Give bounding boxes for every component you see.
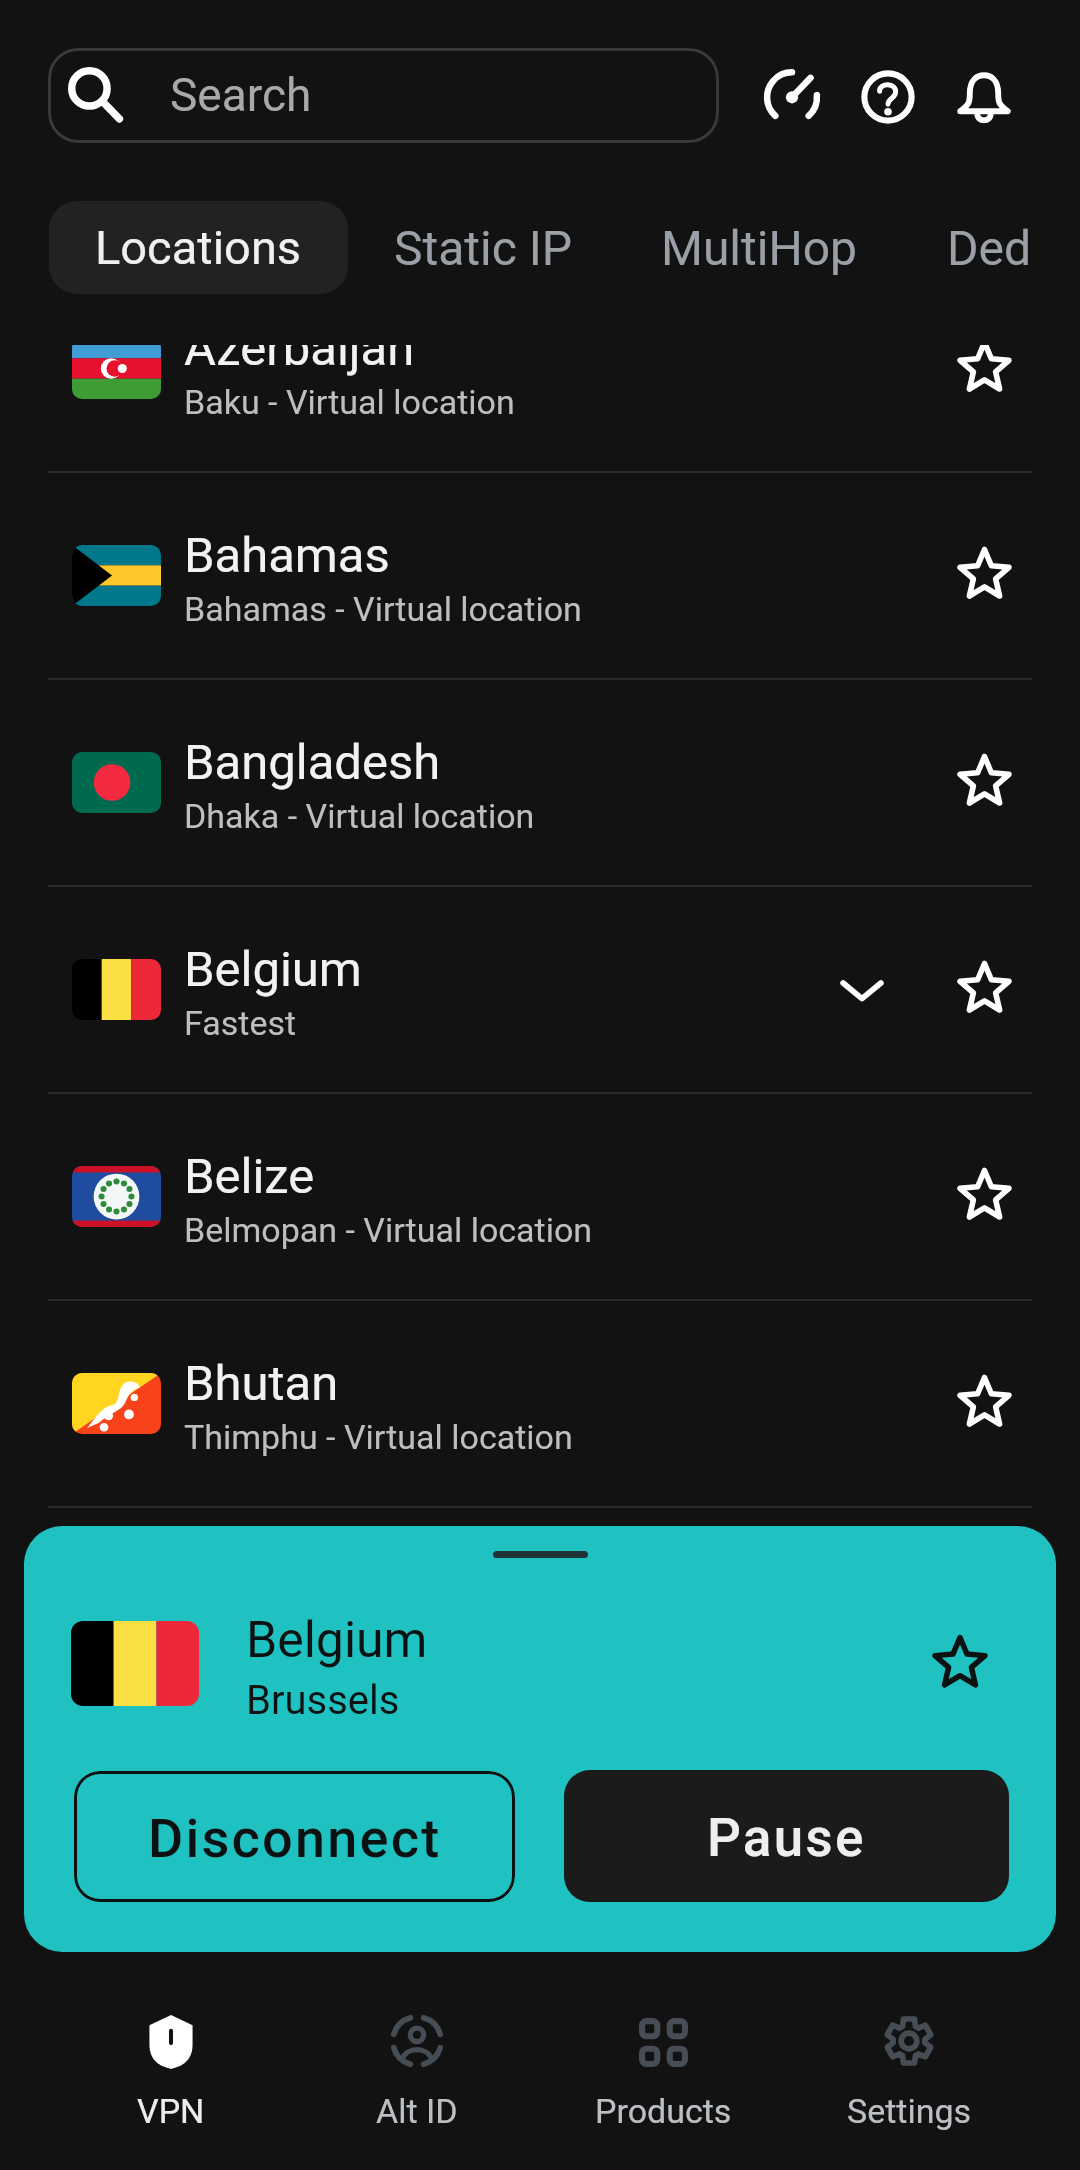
button[interactable]: Alt ID [294, 1952, 540, 2170]
staticText: Static IP [394, 220, 573, 276]
button[interactable]: Favorite [941, 1358, 1027, 1444]
button[interactable]: Belgium [0, 887, 1080, 1092]
staticText: Belgium [246, 1611, 428, 1670]
button[interactable]: Help [840, 49, 936, 145]
button[interactable]: Favorite [941, 345, 1027, 409]
staticText: Settings [847, 2091, 972, 2131]
staticText: Belgium [184, 941, 362, 998]
button[interactable]: Pause [564, 1770, 1009, 1902]
button[interactable]: Favorite [941, 1151, 1027, 1237]
button[interactable]: Favorite [941, 737, 1027, 823]
button[interactable]: Locations [49, 201, 348, 294]
button[interactable]: Azerbaijan [0, 345, 1080, 471]
button[interactable]: Favorite [941, 944, 1027, 1030]
staticText: Brussels [246, 1677, 400, 1724]
button[interactable]: Ded [921, 201, 1076, 294]
staticText: Belize [184, 1148, 315, 1205]
button[interactable]: Static IP [372, 201, 594, 294]
button[interactable]: Bangladesh [0, 680, 1080, 885]
staticText: MultiHop [661, 220, 857, 276]
button[interactable]: Products [540, 1952, 786, 2170]
button[interactable]: VPN [48, 1952, 294, 2170]
staticText: Alt ID [376, 2091, 458, 2131]
staticText: VPN [137, 2091, 205, 2131]
staticText: Bangladesh [184, 734, 441, 791]
staticText: Search [170, 68, 312, 122]
button[interactable]: Expand [819, 947, 905, 1033]
staticText: Fastest [184, 1003, 297, 1043]
staticText: Disconnect [148, 1807, 442, 1870]
staticText: Bhutan [184, 1355, 339, 1412]
staticText: Bahamas - Virtual location [184, 589, 582, 629]
button[interactable]: Notifications [936, 49, 1032, 145]
staticText: Baku - Virtual location [184, 382, 515, 422]
staticText: Dhaka - Virtual location [184, 796, 535, 836]
button[interactable]: Belize [0, 1094, 1080, 1299]
staticText: Products [595, 2091, 732, 2131]
button[interactable]: Bahamas [0, 473, 1080, 678]
button[interactable]: Search [48, 48, 719, 143]
staticText: Azerbaijan [184, 345, 415, 377]
button[interactable]: Favorite [941, 530, 1027, 616]
button[interactable]: Disconnect [74, 1771, 515, 1902]
staticText: Ded [947, 220, 1032, 276]
staticText: Belmopan - Virtual location [184, 1210, 593, 1250]
button[interactable]: Settings [786, 1952, 1032, 2170]
button[interactable]: Speed test [744, 49, 840, 145]
button[interactable]: Favorite [917, 1619, 1003, 1705]
staticText: Pause [707, 1807, 866, 1869]
staticText: Bahamas [184, 527, 390, 584]
staticText: Locations [95, 220, 302, 275]
button[interactable]: MultiHop [640, 201, 877, 294]
button[interactable]: Bhutan [0, 1301, 1080, 1506]
staticText: Thimphu - Virtual location [184, 1417, 573, 1457]
